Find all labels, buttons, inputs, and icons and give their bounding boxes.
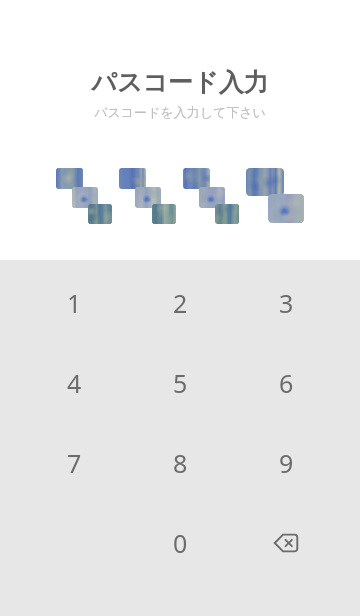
staticText: 0 bbox=[173, 526, 188, 560]
staticText: 1 bbox=[67, 286, 82, 320]
staticText: 6 bbox=[279, 366, 294, 400]
staticText: パスコードを入力して下さい bbox=[94, 104, 266, 120]
button[interactable]: 8 bbox=[127, 423, 233, 503]
staticText: パスコード入力 bbox=[91, 67, 269, 98]
button[interactable]: Backspace bbox=[233, 503, 339, 583]
other: Backspace bbox=[271, 528, 301, 558]
staticText: 9 bbox=[279, 446, 294, 480]
button[interactable]: 5 bbox=[127, 343, 233, 423]
button[interactable]: 0 bbox=[127, 503, 233, 583]
button[interactable]: 3 bbox=[233, 263, 339, 343]
button[interactable]: 6 bbox=[233, 343, 339, 423]
staticText: 8 bbox=[173, 446, 188, 480]
staticText: 4 bbox=[67, 366, 82, 400]
button[interactable]: 7 bbox=[21, 423, 127, 503]
button[interactable]: 4 bbox=[21, 343, 127, 423]
staticText: 7 bbox=[67, 446, 82, 480]
staticText: 2 bbox=[173, 286, 188, 320]
staticText: 5 bbox=[173, 366, 188, 400]
staticText: 3 bbox=[279, 286, 294, 320]
button[interactable]: 9 bbox=[233, 423, 339, 503]
button[interactable]: 2 bbox=[127, 263, 233, 343]
button[interactable]: 1 bbox=[21, 263, 127, 343]
